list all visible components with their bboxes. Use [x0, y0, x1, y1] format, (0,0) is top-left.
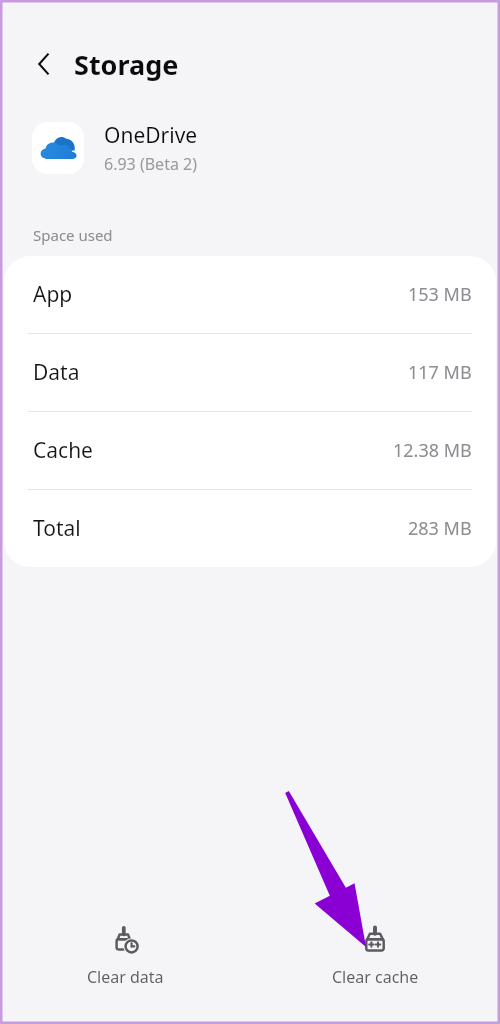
staticText: 153 MB — [408, 282, 472, 307]
staticText: Storage — [74, 46, 179, 83]
staticText: 283 MB — [408, 516, 472, 541]
staticText: 12.38 MB — [393, 438, 472, 463]
staticText: 6.93 (Beta 2) — [104, 153, 197, 175]
other: Clear data — [110, 926, 140, 956]
other: Clear cache — [360, 926, 390, 956]
button[interactable]: Clear cache — [250, 914, 500, 988]
staticText: Data — [33, 358, 80, 387]
staticText: Cache — [33, 436, 93, 465]
staticText: Clear cache — [332, 966, 419, 988]
staticText: OneDrive — [104, 121, 198, 150]
staticText: Total — [33, 514, 81, 543]
staticText: Space used — [33, 225, 113, 245]
staticText: App — [33, 280, 73, 309]
staticText: 117 MB — [408, 360, 472, 385]
button[interactable]: Cache — [4, 412, 496, 490]
button[interactable]: Clear data — [0, 914, 250, 988]
button[interactable]: App — [4, 256, 496, 334]
button[interactable]: Back — [22, 42, 66, 86]
button[interactable]: Total — [4, 490, 496, 567]
staticText: Clear data — [87, 966, 164, 988]
button[interactable]: Data — [4, 334, 496, 412]
